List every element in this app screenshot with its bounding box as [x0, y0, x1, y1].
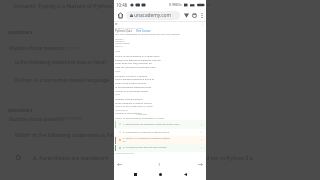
button[interactable]: Tabs	[190, 11, 198, 19]
staticText: Multiple choice question	[9, 116, 63, 122]
staticText: Multiple choice question	[115, 97, 143, 100]
staticText: Python is a consumer-based language	[15, 76, 110, 83]
staticText: Dynamic Typing is a feature	[115, 74, 148, 77]
staticText: 0/1	[123, 140, 127, 143]
staticText: 10:46	[116, 2, 128, 8]
button[interactable]: Next page	[197, 161, 204, 168]
button[interactable]: Home	[116, 11, 125, 20]
staticText: ⋮	[201, 22, 205, 26]
staticText: ›	[201, 130, 202, 134]
button[interactable]: Recent apps	[130, 169, 140, 179]
staticText: | 1 ATTEMPT	[54, 46, 80, 51]
staticText: Courses > Python > Quiz	[115, 26, 143, 29]
button[interactable]: A. Parentheses are mandatory while decla…	[114, 120, 206, 129]
staticText: 1	[158, 162, 161, 167]
button[interactable]: unacademy.com	[126, 11, 180, 20]
staticText: Which of the following is a valid name	[115, 54, 160, 57]
staticText: C. Python is a compiled language by defa…	[123, 137, 171, 140]
staticText: QUESTION 8	[8, 30, 33, 35]
staticText: Which of the following statements is Fal…	[115, 116, 165, 119]
staticText: Python is a consumer-based	[115, 89, 149, 92]
staticText: | 0 ATTEMPTS	[54, 116, 82, 121]
staticText: Python Basics	[115, 42, 130, 45]
staticText: d not in Python 3 a	[206, 154, 253, 161]
staticText: B. Indentation is required to define a b…	[123, 131, 169, 134]
staticText: 1 ATTEMPT	[136, 113, 148, 116]
staticText: ›	[201, 146, 202, 150]
staticText: 0.9KB/s	[169, 2, 182, 7]
button[interactable]: D. Comments start with the hash symbol	[114, 144, 206, 152]
staticText: QUESTION 9	[8, 108, 33, 113]
staticText: QUIZ	[115, 93, 121, 96]
button[interactable]: Previous page	[116, 161, 123, 168]
button[interactable]: More options	[198, 12, 205, 19]
staticText: Which keyword defines a block of	[115, 77, 155, 80]
staticText: Which of the following statements is Fal…	[15, 131, 120, 138]
staticText: unacademy.com	[134, 12, 171, 19]
staticText: QUESTION 8	[115, 109, 128, 112]
staticText: Which keyword is used in Python	[115, 101, 152, 104]
staticText: QUIZ	[115, 70, 121, 73]
staticText: Sign in	[115, 45, 123, 48]
staticText: ≡	[115, 22, 118, 26]
button[interactable]: 1	[156, 161, 163, 168]
staticText: Test your knowledge of python basics wit…	[115, 33, 181, 36]
staticText: Explain the difference between the two	[115, 58, 161, 61]
staticText: Multiple choice question	[9, 45, 63, 51]
staticText: A. Parentheses are mandatory while decla…	[123, 123, 180, 126]
button[interactable]: C. Python is a compiled language by defa…	[114, 136, 206, 144]
staticText: Lesson 2	[115, 40, 125, 43]
staticText: D. Comments start with the hash symbol	[123, 146, 167, 149]
staticText: Lesson 1	[115, 38, 125, 41]
staticText: ›	[201, 123, 202, 127]
staticText: A. Parentheses are mandatory	[33, 154, 108, 161]
staticText: Multiple choice question	[115, 112, 142, 115]
staticText: What is the output of print	[115, 81, 147, 84]
button[interactable]: Home	[155, 169, 165, 179]
staticText: QUIZ	[115, 50, 121, 53]
staticText: Is the following statement true	[115, 85, 152, 88]
staticText: Show explanation	[115, 152, 135, 155]
button[interactable]: B. Indentation is required to define a b…	[114, 128, 206, 136]
staticText: Which of the statements is False	[115, 104, 153, 107]
button[interactable]: Share	[182, 11, 190, 19]
staticText: ›	[201, 138, 202, 142]
staticText: Python Quiz ·	[115, 29, 135, 33]
staticText: How do you write a comment here	[115, 65, 156, 68]
staticText: What does the len() function do	[115, 61, 152, 64]
staticText: Free Course	[136, 29, 151, 33]
staticText: Is the following statement true or false…	[15, 59, 107, 66]
staticText: Dynamic Typing is a feature of Python.	[14, 2, 114, 9]
button[interactable]: Back	[180, 169, 190, 179]
